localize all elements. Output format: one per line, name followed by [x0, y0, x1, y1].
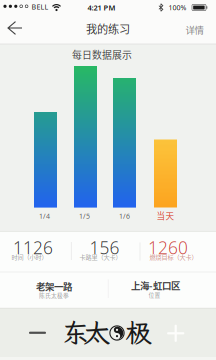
staticText: 极: [125, 315, 152, 350]
staticText: 1/5: [79, 211, 90, 221]
staticText: 1/4: [39, 211, 50, 221]
button[interactable]: Decrease: [22, 318, 52, 348]
staticText: 每日数据展示: [72, 47, 132, 62]
staticText: 156: [89, 236, 119, 259]
staticText: 1/6: [119, 211, 130, 221]
staticText: 上海-虹口区: [131, 278, 180, 292]
staticText: 时间（小时）: [11, 252, 47, 261]
staticText: 100%: [168, 3, 186, 12]
button[interactable]: 上海-虹口区: [108, 272, 215, 308]
staticText: 当天: [156, 209, 174, 222]
staticText: 东: [62, 315, 89, 350]
staticText: 卡路里（大卡）: [79, 252, 121, 261]
staticText: 燃烧目标（大卡）: [149, 252, 197, 261]
button[interactable]: Increase: [161, 318, 191, 348]
staticText: BELL: [31, 2, 48, 12]
staticText: 陈氏太极拳: [39, 291, 69, 299]
staticText: 1126: [13, 236, 53, 259]
staticText: 4:21 PM: [87, 2, 115, 13]
button[interactable]: Back: [2, 16, 28, 40]
staticText: 位置: [148, 291, 160, 299]
staticText: 详情: [185, 23, 203, 36]
staticText: 太: [83, 315, 110, 350]
staticText: 老架一路: [36, 279, 72, 293]
staticText: 我的练习: [86, 20, 130, 37]
button[interactable]: 老架一路: [0, 272, 107, 308]
staticText: 1260: [148, 236, 188, 259]
button[interactable]: 详情: [179, 18, 209, 40]
